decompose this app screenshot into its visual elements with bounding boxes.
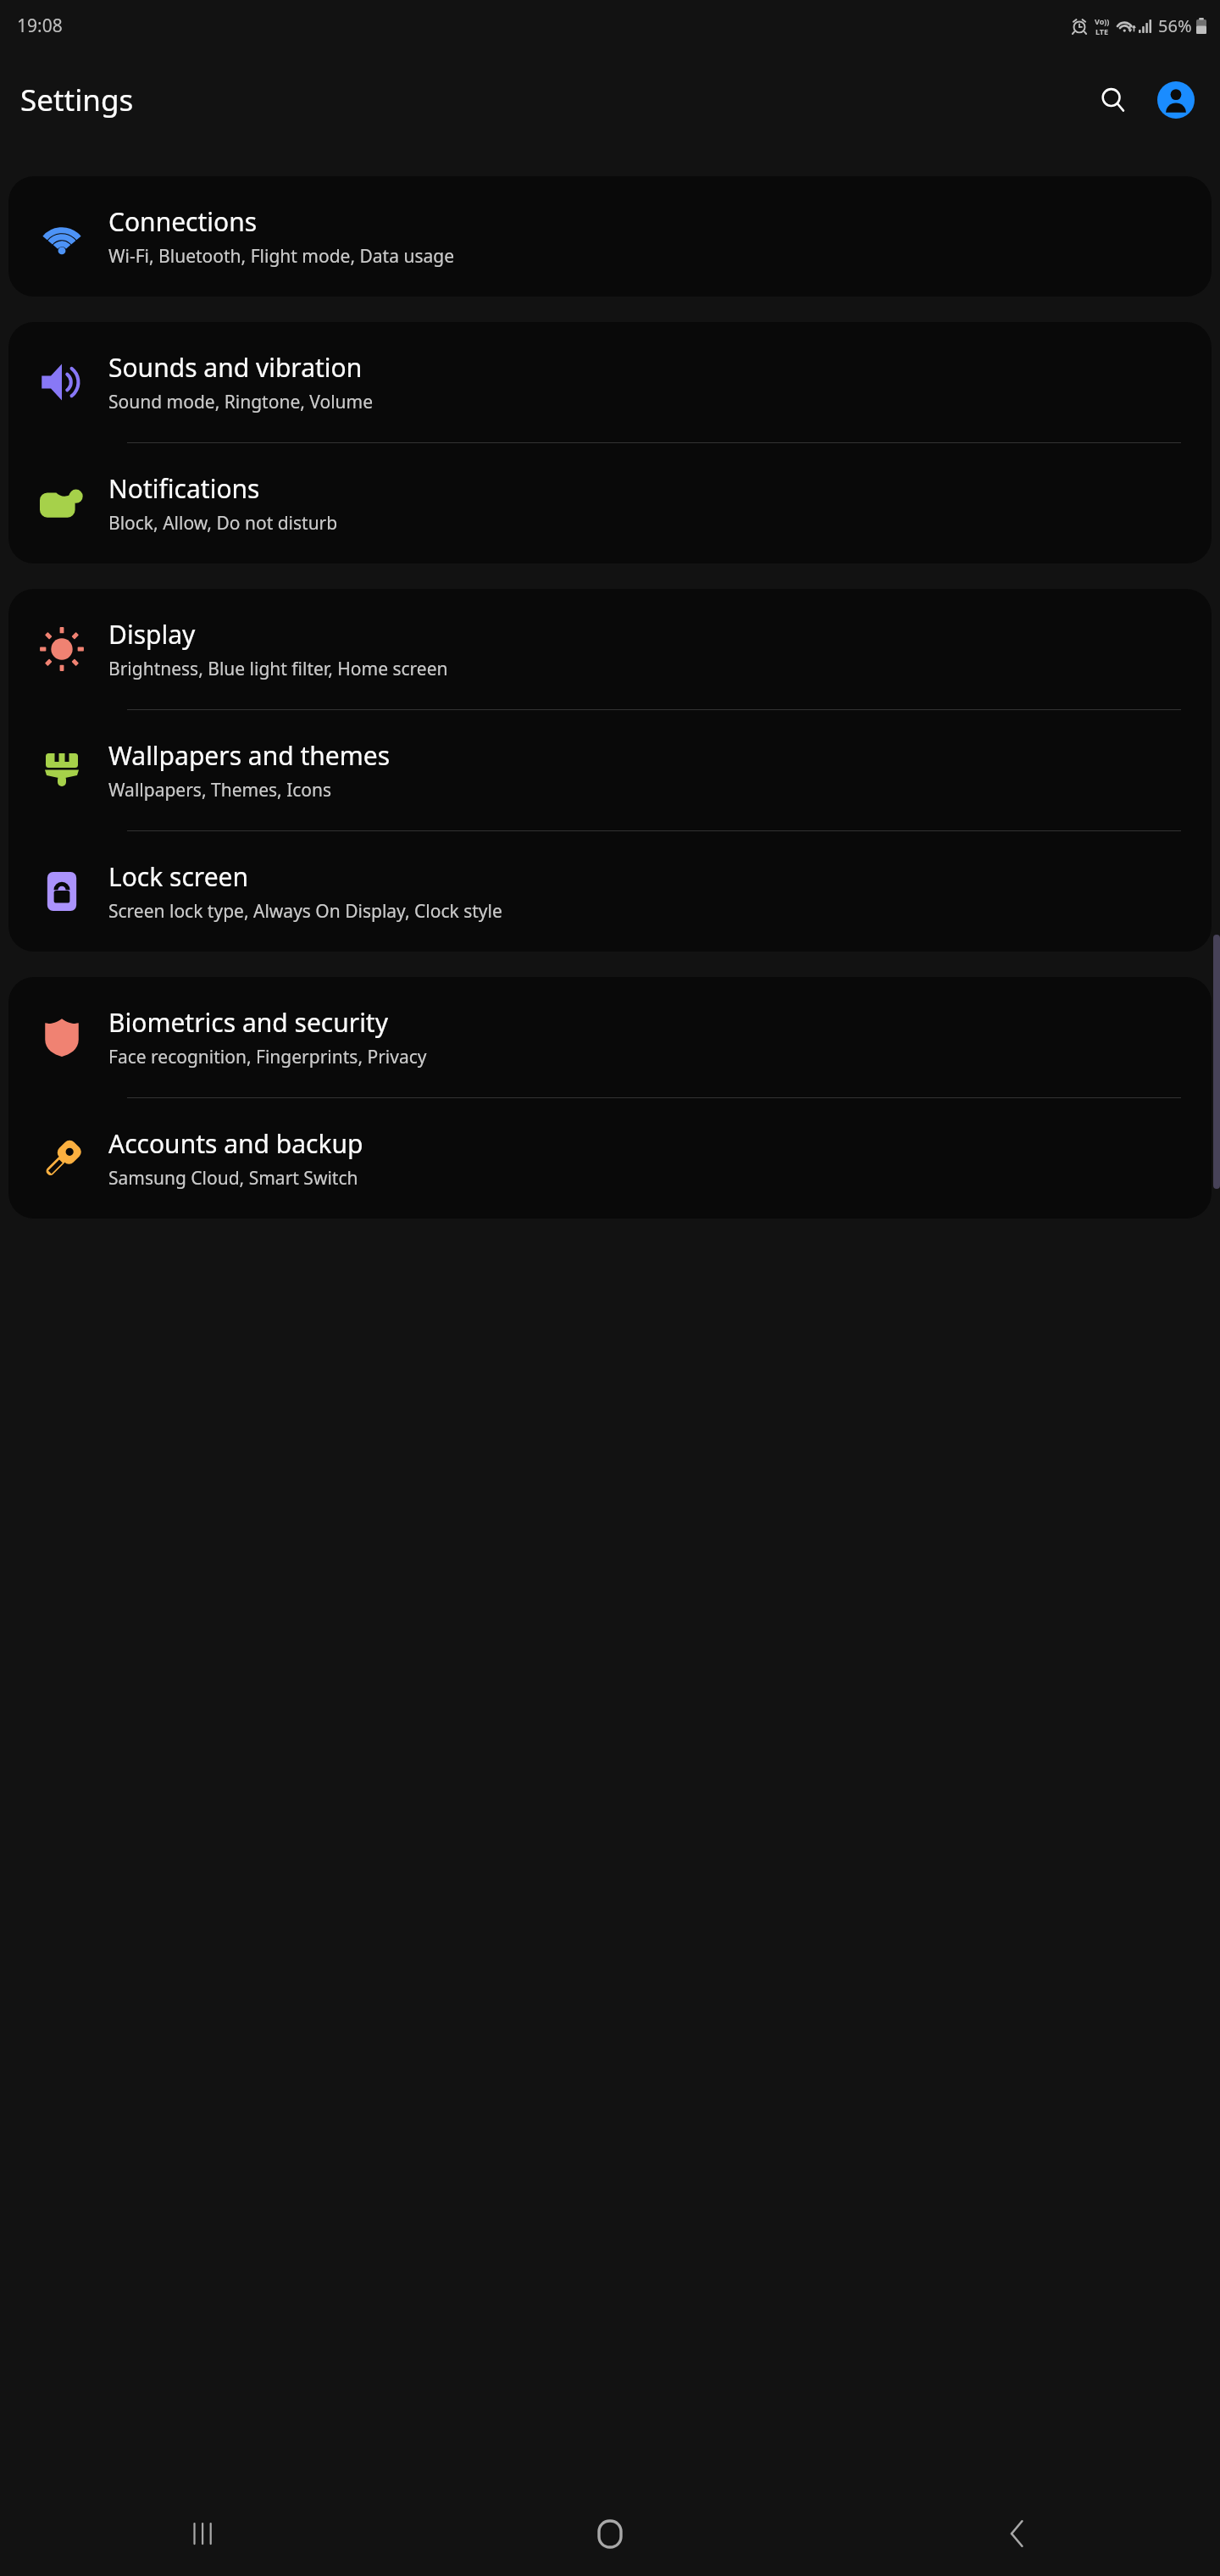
- staticText: Lock screen: [108, 859, 249, 894]
- staticText: Biometrics and security: [108, 1005, 388, 1040]
- staticText: Sounds and vibration: [108, 350, 363, 385]
- staticText: Sound mode, Ringtone, Volume: [108, 390, 374, 414]
- button[interactable]: Sounds and vibration: [8, 322, 1212, 442]
- staticText: 19:08: [17, 14, 63, 38]
- staticText: 56%: [1158, 14, 1192, 37]
- button[interactable]: Back: [813, 2491, 1220, 2576]
- button[interactable]: Biometrics and security: [8, 977, 1212, 1097]
- staticText: Wi-Fi, Bluetooth, Flight mode, Data usag…: [108, 244, 455, 269]
- staticText: Brightness, Blue light filter, Home scre…: [108, 657, 448, 681]
- staticText: Settings: [20, 80, 134, 120]
- button[interactable]: Recents: [0, 2491, 407, 2576]
- staticText: Screen lock type, Always On Display, Clo…: [108, 899, 502, 924]
- button[interactable]: Home: [407, 2491, 813, 2576]
- staticText: LTE: [1095, 26, 1109, 36]
- button[interactable]: Search: [1090, 76, 1137, 124]
- staticText: Notifications: [108, 471, 260, 506]
- button[interactable]: Wallpapers and themes: [8, 710, 1212, 830]
- staticText: Samsung Cloud, Smart Switch: [108, 1166, 358, 1191]
- button[interactable]: Connections: [8, 176, 1212, 297]
- button[interactable]: Display: [8, 589, 1212, 709]
- staticText: Accounts and backup: [108, 1126, 363, 1161]
- button[interactable]: Accounts and backup: [8, 1098, 1212, 1219]
- staticText: Wallpapers and themes: [108, 738, 391, 773]
- staticText: Connections: [108, 204, 258, 239]
- staticText: Display: [108, 617, 196, 652]
- staticText: Face recognition, Fingerprints, Privacy: [108, 1045, 427, 1069]
- button[interactable]: Account: [1152, 76, 1200, 124]
- staticText: Vo)): [1095, 16, 1110, 26]
- button[interactable]: Lock screen: [8, 831, 1212, 952]
- staticText: Wallpapers, Themes, Icons: [108, 778, 332, 802]
- button[interactable]: Notifications: [8, 443, 1212, 563]
- staticText: Block, Allow, Do not disturb: [108, 511, 338, 536]
